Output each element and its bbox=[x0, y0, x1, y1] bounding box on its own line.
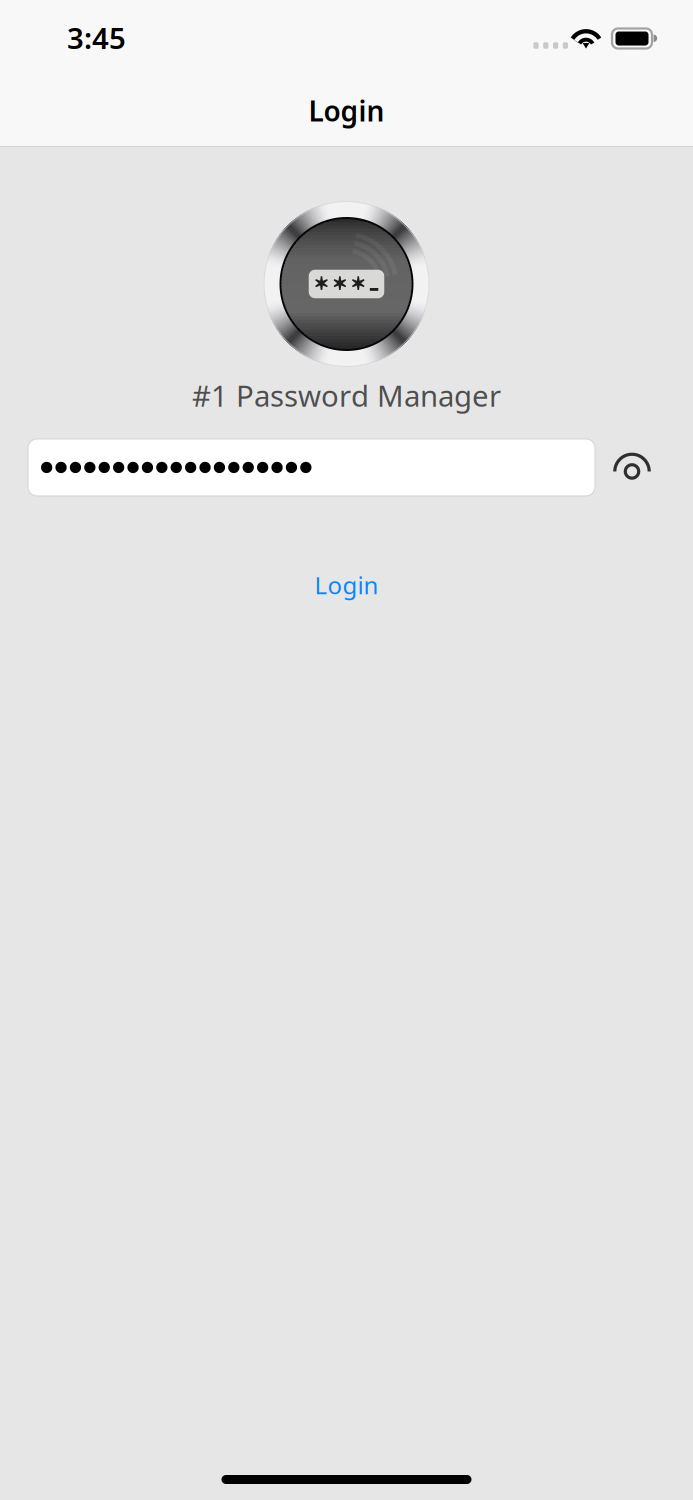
staticText: Login bbox=[314, 569, 378, 601]
button[interactable]: Show password bbox=[609, 444, 655, 490]
staticText: #1 Password Manager bbox=[192, 376, 501, 415]
staticText: 3:45 bbox=[67, 18, 126, 57]
button[interactable]: Login bbox=[0, 557, 693, 613]
staticText: Login bbox=[308, 92, 384, 129]
